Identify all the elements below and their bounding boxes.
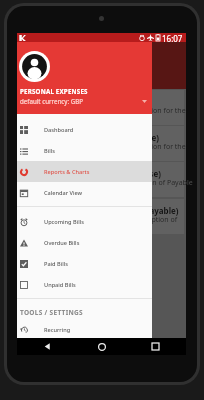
staticText: Description of Payable [119,178,193,188]
staticText: Description of [131,215,178,225]
button[interactable]: Summary (name) [18,90,184,125]
button[interactable]: Payment (payable) [18,199,184,234]
button[interactable]: Bills [17,140,152,161]
staticText: Reports & Charts [44,168,90,176]
button[interactable]: Bill Types (Expense) [18,162,184,197]
staticText: PERSONAL EXPENSES [20,87,88,95]
staticText: Upcoming Bills [44,218,84,226]
staticText: Recurring [44,326,71,334]
staticText: Dashboard [44,126,74,134]
button[interactable]: Categories (name) [18,126,184,161]
button[interactable]: Upcoming Bills [17,211,152,232]
staticText: Paid Bills [44,260,68,268]
button[interactable]: Overdue Bills [17,232,152,253]
staticText: Bills [44,147,55,155]
staticText: Calendar View [44,189,83,197]
button[interactable]: Home [93,338,110,355]
staticText: Description for the [124,106,186,116]
button[interactable]: Paid Bills [17,253,152,274]
button[interactable]: Calendar View [17,182,152,203]
staticText: Payment (payable) [104,205,179,216]
staticText: Unpaid Bills [44,281,76,289]
staticText: Overdue Bills [44,239,80,247]
button[interactable]: PERSONAL EXPENSES [17,42,152,114]
staticText: Description for the [124,142,186,152]
button[interactable]: Back [39,338,56,355]
button[interactable]: Recent apps [147,338,164,355]
button[interactable]: Unpaid Bills [17,274,152,295]
staticText: Summary (name) [81,96,150,107]
staticText: Categories (name) [86,132,160,143]
button[interactable]: Recurring [17,319,152,340]
staticText: default currency: GBP [20,97,83,105]
button[interactable]: Reports & Charts [17,161,152,182]
staticText: 16:07 [162,33,183,42]
button[interactable]: Dashboard [17,119,152,140]
staticText: TOOLS / SETTINGS [20,308,83,317]
staticText: Bill Types (Expense) [83,168,161,179]
